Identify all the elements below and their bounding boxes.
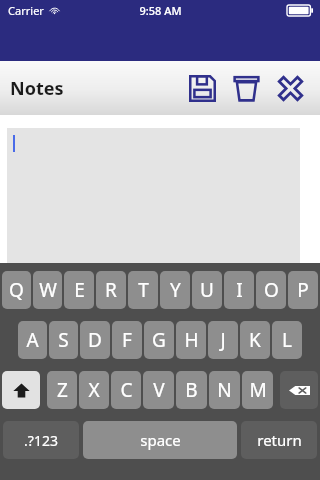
staticText: Notes bbox=[10, 76, 64, 101]
button[interactable]: .?123 bbox=[3, 421, 79, 459]
button[interactable]: T bbox=[128, 271, 158, 309]
staticText: N bbox=[217, 377, 232, 403]
button[interactable]: E bbox=[64, 271, 94, 309]
staticText: F bbox=[122, 327, 132, 353]
staticText: return bbox=[257, 430, 302, 450]
button[interactable]: H bbox=[176, 321, 206, 359]
button[interactable]: U bbox=[192, 271, 222, 309]
staticText: P bbox=[297, 277, 309, 303]
staticText: T bbox=[138, 277, 149, 303]
staticText: R bbox=[105, 277, 117, 303]
button[interactable]: V bbox=[143, 371, 174, 409]
staticText: D bbox=[88, 327, 102, 353]
button[interactable]: return bbox=[241, 421, 317, 459]
button[interactable]: F bbox=[112, 321, 142, 359]
button[interactable]: A bbox=[18, 321, 47, 359]
button[interactable]: Y bbox=[160, 271, 190, 309]
button[interactable]: G bbox=[144, 321, 174, 359]
staticText: A bbox=[26, 327, 39, 353]
button[interactable]: R bbox=[96, 271, 126, 309]
staticText: X bbox=[88, 377, 100, 403]
staticText: Carrier bbox=[8, 3, 44, 18]
button[interactable]: P bbox=[288, 271, 318, 309]
button[interactable]: I bbox=[224, 271, 254, 309]
button[interactable]: Delete bbox=[224, 66, 268, 110]
staticText: L bbox=[282, 327, 292, 353]
staticText: W bbox=[39, 277, 57, 303]
staticText: Y bbox=[170, 277, 181, 303]
staticText: J bbox=[220, 327, 226, 353]
button[interactable]: K bbox=[240, 321, 270, 359]
button[interactable]: L bbox=[272, 321, 302, 359]
staticText: Z bbox=[57, 377, 68, 403]
button[interactable]: Close bbox=[268, 66, 312, 110]
button[interactable]: B bbox=[176, 371, 207, 409]
button[interactable]: S bbox=[49, 321, 78, 359]
staticText: E bbox=[74, 277, 85, 303]
button[interactable]: N bbox=[209, 371, 240, 409]
button[interactable] bbox=[7, 128, 300, 263]
button[interactable]: D bbox=[80, 321, 110, 359]
staticText: B bbox=[185, 377, 198, 403]
staticText: .?123 bbox=[24, 431, 58, 450]
staticText: V bbox=[153, 377, 165, 403]
staticText: space bbox=[140, 430, 181, 450]
staticText: U bbox=[200, 277, 214, 303]
button[interactable]: Z bbox=[47, 371, 77, 409]
button[interactable]: Q bbox=[2, 271, 31, 309]
staticText: S bbox=[58, 327, 69, 353]
staticText: K bbox=[249, 327, 261, 353]
button[interactable]: J bbox=[208, 321, 238, 359]
button[interactable]: O bbox=[256, 271, 286, 309]
staticText: M bbox=[249, 377, 267, 403]
button[interactable]: C bbox=[111, 371, 141, 409]
button[interactable]: X bbox=[79, 371, 109, 409]
staticText: G bbox=[152, 327, 166, 353]
button[interactable]: M bbox=[242, 371, 273, 409]
staticText: 9:58 AM bbox=[139, 3, 182, 18]
staticText: C bbox=[120, 377, 133, 403]
button[interactable]: space bbox=[83, 421, 237, 459]
button[interactable]: Backspace bbox=[280, 371, 318, 409]
staticText: Q bbox=[9, 277, 24, 303]
staticText: O bbox=[264, 277, 279, 303]
staticText: I bbox=[236, 277, 243, 303]
button[interactable]: Save bbox=[180, 66, 224, 110]
button[interactable]: Shift bbox=[2, 371, 40, 409]
staticText: H bbox=[184, 327, 199, 353]
button[interactable]: W bbox=[33, 271, 62, 309]
